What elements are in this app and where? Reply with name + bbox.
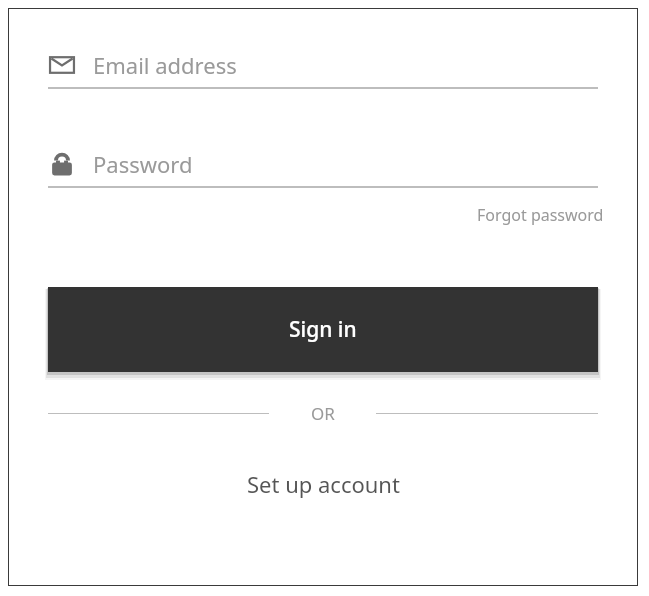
button[interactable]: Password (48, 146, 598, 182)
button[interactable]: Sign in (48, 287, 598, 372)
other: Password (48, 150, 76, 178)
staticText: Sign in (289, 315, 357, 344)
staticText: OR (311, 402, 335, 425)
button[interactable]: Set up account (235, 463, 412, 505)
staticText: Forgot password (477, 204, 604, 226)
other: Email (48, 51, 76, 79)
staticText: Set up account (247, 469, 400, 499)
staticText: Password (93, 149, 193, 179)
staticText: Email address (93, 50, 237, 80)
button[interactable]: Forgot password (475, 202, 606, 228)
button[interactable]: Email (48, 47, 598, 83)
